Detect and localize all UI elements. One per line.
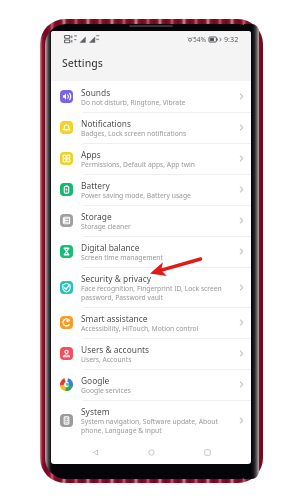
staticText: Google services (81, 386, 131, 395)
staticText: Power saving mode, Battery usage (81, 191, 191, 200)
button[interactable]: Smart assistance (51, 307, 251, 338)
staticText: Settings (62, 56, 103, 70)
staticText: Users, Accounts (81, 355, 132, 364)
button[interactable]: Digital balance (51, 236, 251, 267)
staticText: Badges, Lock screen notifications (81, 129, 187, 138)
staticText: 54% (193, 35, 207, 44)
button[interactable]: Recent apps (195, 440, 219, 464)
staticText: Notifications (81, 118, 131, 129)
staticText: Sounds (81, 87, 111, 98)
button[interactable]: Storage (51, 205, 251, 236)
button[interactable]: Security & privacy (51, 267, 251, 307)
staticText: System navigation, Software update, Abou… (81, 417, 218, 426)
button[interactable]: Sounds (51, 81, 251, 112)
staticText: Battery (81, 180, 110, 191)
button[interactable]: Back (83, 440, 107, 464)
staticText: Screen time management (81, 253, 163, 262)
staticText: Smart assistance (81, 313, 148, 324)
staticText: Users & accounts (81, 344, 150, 355)
staticText: Storage cleaner (81, 222, 131, 231)
staticText: Face recognition, Fingerprint ID, Lock s… (81, 284, 222, 293)
staticText: password, Password vault (81, 293, 164, 302)
staticText: Accessibility, HiTouch, Motion control (81, 324, 199, 333)
staticText: phone, Language & input (81, 426, 162, 435)
staticText: Storage (81, 211, 112, 222)
staticText: Do not disturb, Ringtone, Vibrate (81, 98, 186, 107)
staticText: Security & privacy (81, 273, 152, 284)
button[interactable]: Battery (51, 174, 251, 205)
button[interactable]: Home (139, 440, 163, 464)
staticText: Apps (81, 149, 101, 160)
staticText: Google (81, 375, 110, 386)
button[interactable]: Notifications (51, 112, 251, 143)
button[interactable]: Apps (51, 143, 251, 174)
button[interactable]: Google (51, 369, 251, 400)
staticText: Permissions, Default apps, App twin (81, 160, 195, 169)
staticText: Digital balance (81, 242, 140, 253)
staticText: System (81, 406, 110, 417)
staticText: 9:32 (224, 34, 239, 44)
button[interactable]: System (51, 400, 251, 440)
button[interactable]: Users & accounts (51, 338, 251, 369)
